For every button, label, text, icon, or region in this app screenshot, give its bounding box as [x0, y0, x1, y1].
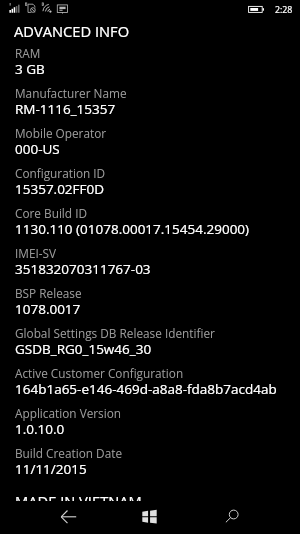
staticText: Manufacturer Name [15, 85, 127, 101]
staticText: Application Version [15, 405, 122, 421]
staticText: RAM [15, 45, 41, 61]
staticText: Global Settings DB Release Identifier [15, 325, 215, 341]
staticText: RM-1116_15357 [15, 100, 116, 118]
staticText: GSDB_RG0_15w46_30 [15, 340, 152, 358]
staticText: MADE IN VIETNAM [15, 491, 142, 501]
staticText: IMEI-SV [15, 245, 57, 261]
staticText: Configuration ID [15, 165, 106, 181]
staticText: 1078.0017 [15, 300, 81, 318]
staticText: BSP Release [15, 285, 82, 301]
staticText: 1130.110 (01078.00017.15454.29000) [15, 220, 250, 238]
button[interactable]: Start [124, 501, 176, 534]
button[interactable]: Back [43, 501, 95, 534]
staticText: Build Creation Date [15, 445, 123, 461]
staticText: 2:28 [275, 4, 293, 16]
staticText: Core Build ID [15, 205, 87, 221]
staticText: Mobile Operator [15, 125, 107, 141]
button[interactable]: Search [206, 501, 258, 534]
staticText: 000-US [15, 140, 60, 158]
staticText: 15357.02FF0D [15, 180, 105, 198]
staticText: ADVANCED INFO [14, 21, 130, 41]
staticText: Active Customer Configuration [15, 365, 184, 381]
staticText: 164b1a65-e146-469d-a8a8-fda8b7acd4ab [15, 380, 277, 398]
staticText: 11/11/2015 [15, 460, 87, 478]
staticText: 1.0.10.0 [15, 420, 65, 438]
staticText: 351832070311767-03 [15, 260, 151, 278]
staticText: 3 GB [15, 60, 45, 78]
